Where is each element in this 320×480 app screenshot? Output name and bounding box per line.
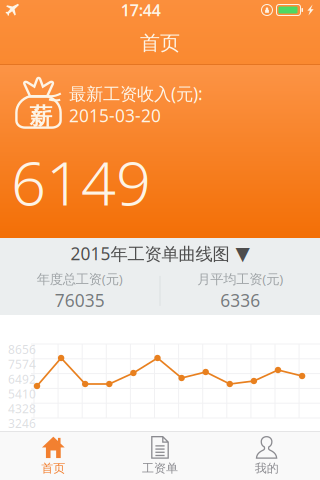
staticText: 首页 xyxy=(140,31,180,55)
button[interactable]: 首页 xyxy=(0,432,107,480)
staticText: 首页 xyxy=(41,461,65,476)
staticText: 年度总工资(元) xyxy=(37,270,123,288)
staticText: 2015-03-20 xyxy=(69,104,161,127)
staticText: 7574 xyxy=(8,356,36,372)
staticText: 17:44 xyxy=(121,0,161,21)
staticText: ▼ xyxy=(235,243,249,264)
staticText: 5410 xyxy=(8,386,36,402)
staticText: 6149 xyxy=(11,141,151,222)
staticText: 3246 xyxy=(8,415,36,431)
staticText: 6492 xyxy=(8,371,36,387)
staticText: 4328 xyxy=(8,401,36,416)
staticText: 6336 xyxy=(220,289,260,312)
staticText: 最新工资收入(元): xyxy=(69,82,203,105)
staticText: 我的 xyxy=(255,461,279,476)
staticText: 8656 xyxy=(8,341,36,357)
staticText: 76035 xyxy=(55,289,105,312)
button[interactable]: 我的 xyxy=(213,432,320,480)
staticText: 工资单 xyxy=(142,461,178,476)
button[interactable]: 2015年工资单曲线图 xyxy=(0,238,320,270)
staticText: 薪 xyxy=(29,102,52,130)
staticText: 2015年工资单曲线图 xyxy=(70,242,229,265)
button[interactable]: 工资单 xyxy=(107,432,213,480)
staticText: 月平均工资(元) xyxy=(197,270,283,288)
